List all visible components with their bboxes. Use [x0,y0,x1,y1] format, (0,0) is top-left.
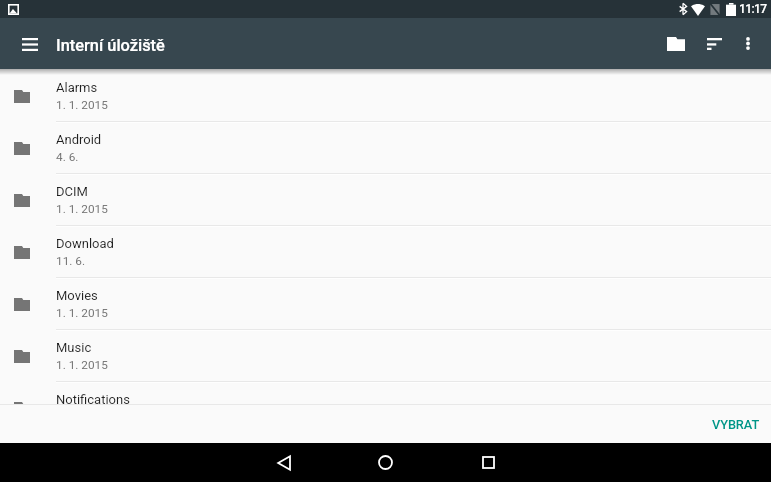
button[interactable]: Menu [6,24,54,63]
staticText: Movies [56,288,98,303]
staticText: VYBRAT [712,417,760,432]
staticText: Music [56,340,92,355]
button[interactable]: Alarms [0,71,771,123]
button[interactable]: New folder [656,24,695,63]
button[interactable]: More options [728,24,767,63]
staticText: Alarms [56,80,98,95]
button[interactable]: Sort [695,24,734,63]
button[interactable]: VYBRAT [700,408,771,439]
button[interactable]: Home [365,443,405,482]
button[interactable]: Recents [468,443,508,482]
staticText: 1. 1. 2015 [56,358,108,372]
staticText: 11. 6. [56,254,86,268]
button[interactable]: Movies [0,279,771,331]
staticText: Interní úložiště [56,36,165,55]
button[interactable]: Back [264,443,304,482]
staticText: DCIM [56,184,88,199]
button[interactable]: Download [0,227,771,279]
staticText: 4. 6. [56,150,79,164]
staticText: Notifications [56,392,130,407]
staticText: 1. 1. 2015 [56,306,108,320]
staticText: 1. 1. 2015 [56,98,108,112]
staticText: 11:17 [739,2,767,16]
button[interactable]: Android [0,123,771,175]
staticText: Download [56,236,114,251]
button[interactable]: Music [0,331,771,383]
button[interactable]: DCIM [0,175,771,227]
staticText: Android [56,132,102,147]
button[interactable]: Notifications [0,383,771,435]
staticText: 1. 1. 2015 [56,202,108,216]
